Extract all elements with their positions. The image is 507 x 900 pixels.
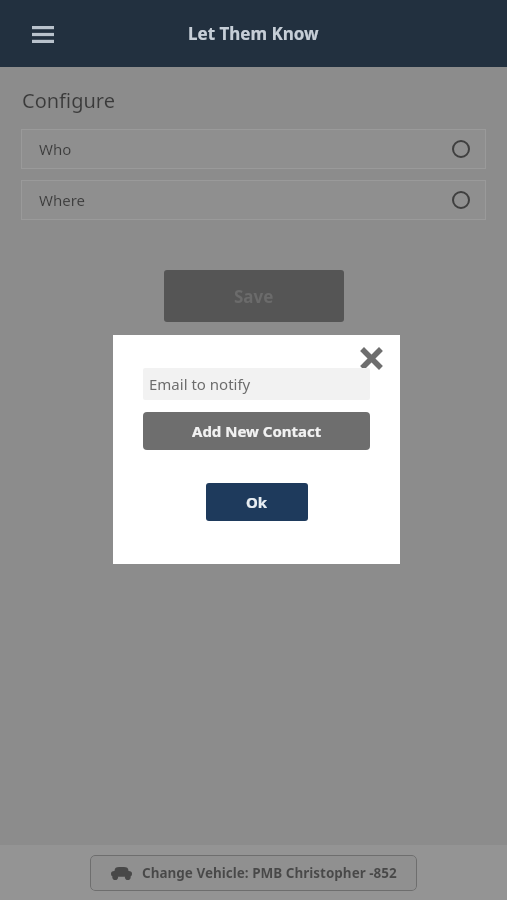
staticText: Change Vehicle: PMB Christopher -852 — [142, 864, 397, 882]
button[interactable]: Ok — [206, 483, 308, 521]
staticText: Configure — [22, 87, 115, 114]
staticText: Let Them Know — [188, 22, 319, 45]
button[interactable]: Change Vehicle: PMB Christopher -852 — [90, 855, 417, 891]
button[interactable]: Add New Contact — [143, 412, 370, 450]
button[interactable]: Who — [21, 129, 486, 169]
button[interactable]: Save — [164, 270, 344, 322]
button[interactable]: Open navigation menu — [22, 13, 64, 55]
staticText: Add New Contact — [192, 421, 322, 441]
button[interactable]: Email to notify — [143, 368, 370, 400]
staticText: Email to notify — [149, 374, 251, 394]
staticText: Save — [234, 285, 274, 308]
staticText: Who — [39, 139, 452, 159]
button[interactable]: Close — [354, 341, 388, 375]
staticText: Ok — [246, 492, 268, 512]
staticText: Where — [39, 190, 452, 210]
button[interactable]: Where — [21, 180, 486, 220]
